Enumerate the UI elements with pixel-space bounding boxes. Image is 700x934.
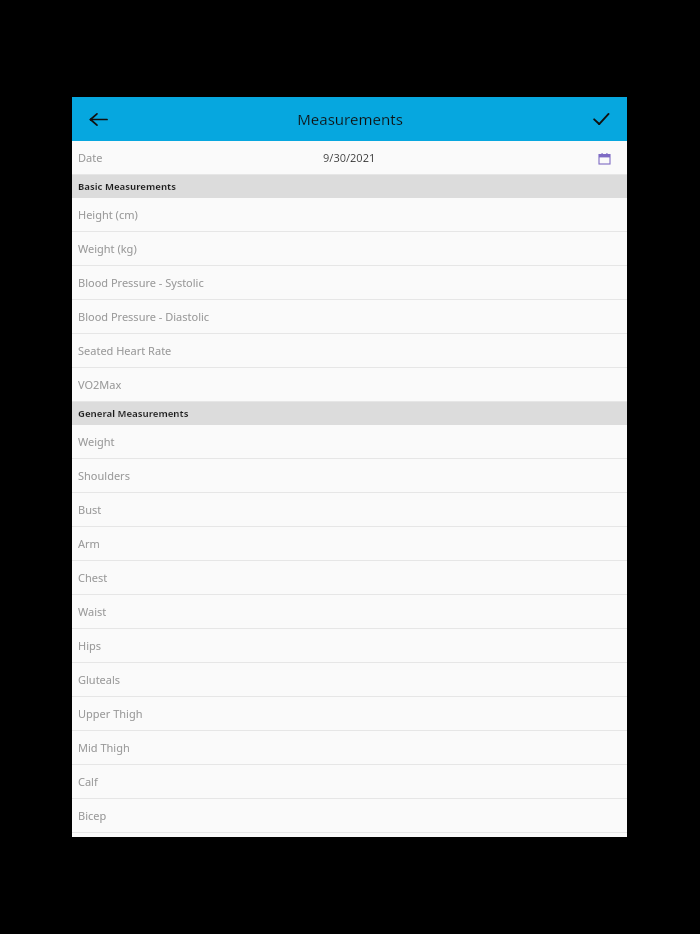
button[interactable]: Chest <box>72 561 627 594</box>
staticText: Chest <box>78 570 108 585</box>
button[interactable]: Calf <box>72 765 627 798</box>
button[interactable]: Date <box>72 141 627 174</box>
staticText: Measurements <box>297 109 403 129</box>
staticText: Shoulders <box>78 468 130 483</box>
button[interactable]: Shoulders <box>72 459 627 492</box>
staticText: Height (cm) <box>78 207 138 222</box>
button[interactable]: Mid Thigh <box>72 731 627 764</box>
staticText: Hips <box>78 638 102 653</box>
button[interactable]: Height (cm) <box>72 198 627 231</box>
staticText: Waist <box>78 604 107 619</box>
button[interactable]: Blood Pressure - Diastolic <box>72 300 627 333</box>
staticText: VO2Max <box>78 377 122 392</box>
button[interactable]: VO2Max <box>72 368 627 401</box>
staticText: Mid Thigh <box>78 740 130 755</box>
button[interactable]: Seated Heart Rate <box>72 334 627 367</box>
staticText: General Measurements <box>78 407 189 420</box>
button[interactable]: Back <box>78 99 118 139</box>
button[interactable]: Weight <box>72 425 627 458</box>
staticText: Blood Pressure - Diastolic <box>78 309 210 324</box>
button[interactable]: Waist <box>72 595 627 628</box>
staticText: 9/30/2021 <box>323 150 376 165</box>
button[interactable]: Hips <box>72 629 627 662</box>
staticText: Gluteals <box>78 672 121 687</box>
staticText: Upper Thigh <box>78 706 143 721</box>
button[interactable]: Arm <box>72 527 627 560</box>
button[interactable]: Upper Thigh <box>72 697 627 730</box>
button[interactable]: Bicep <box>72 799 627 832</box>
staticText: Seated Heart Rate <box>78 343 172 358</box>
staticText: Blood Pressure - Systolic <box>78 275 204 290</box>
button[interactable]: Blood Pressure - Systolic <box>72 266 627 299</box>
button[interactable]: Bust <box>72 493 627 526</box>
button[interactable]: Weight (kg) <box>72 232 627 265</box>
other: Pick date <box>593 147 615 169</box>
button[interactable]: Save <box>581 99 621 139</box>
staticText: Weight (kg) <box>78 241 137 256</box>
staticText: Arm <box>78 536 100 551</box>
staticText: Date <box>78 150 103 165</box>
staticText: Bust <box>78 502 102 517</box>
staticText: Bicep <box>78 808 107 823</box>
staticText: Calf <box>78 774 98 789</box>
staticText: Basic Measurements <box>78 180 176 193</box>
staticText: Weight <box>78 434 115 449</box>
button[interactable]: Gluteals <box>72 663 627 696</box>
